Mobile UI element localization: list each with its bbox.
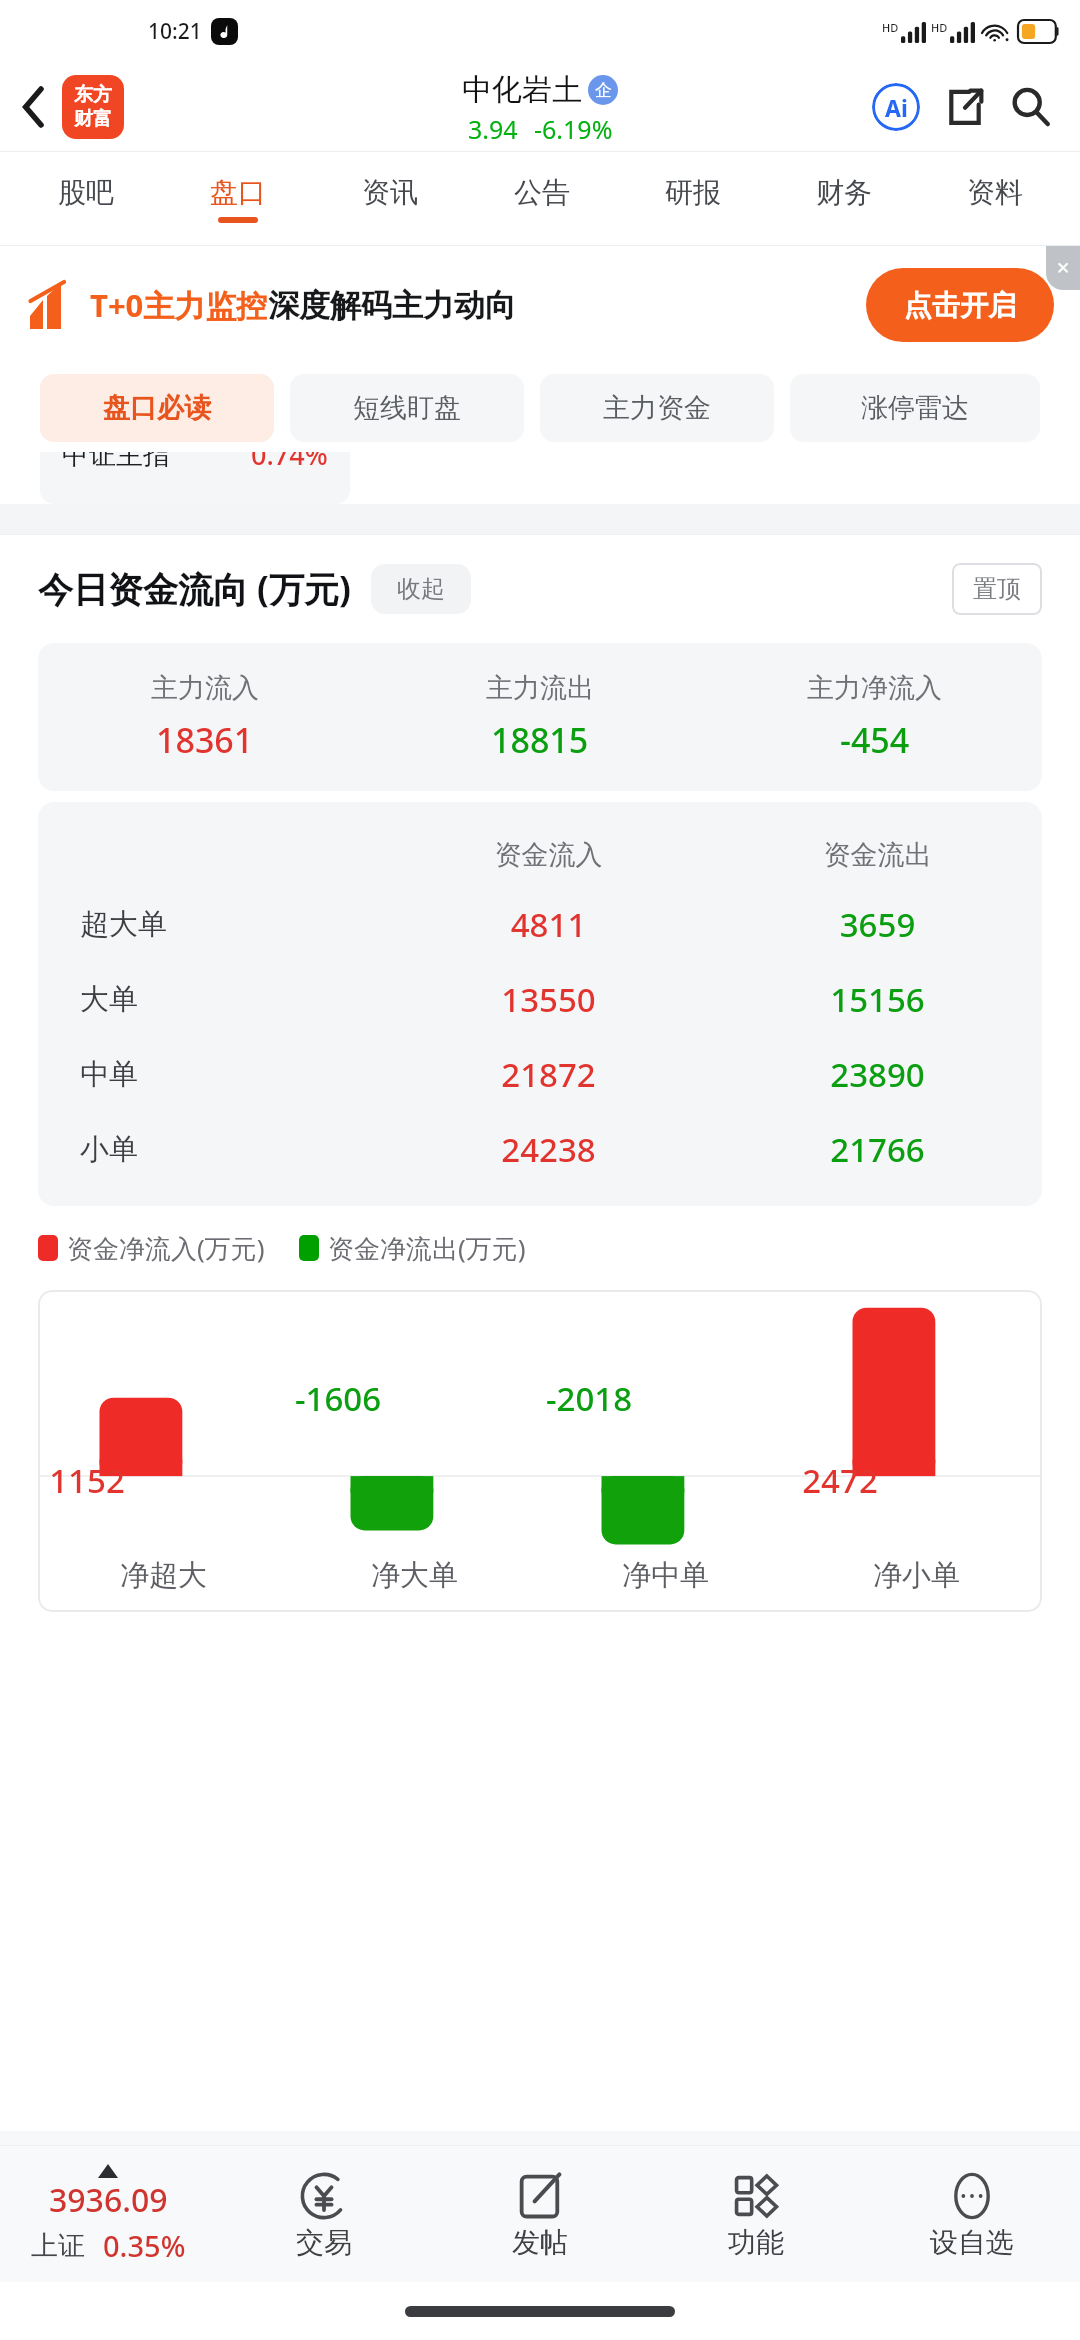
staticText: 2472 bbox=[785, 1458, 895, 1503]
staticText: 资金净流出(万元) bbox=[328, 1230, 526, 1266]
staticText: 13550 bbox=[384, 977, 713, 1022]
button[interactable]: 东方 bbox=[62, 75, 124, 139]
staticText: 主力净流入 bbox=[807, 671, 942, 705]
staticText: 超大单 bbox=[80, 906, 167, 943]
staticText: 深度解码主力动向 bbox=[268, 286, 516, 325]
staticText: -1606 bbox=[283, 1376, 393, 1421]
staticText: 资金净流入(万元) bbox=[67, 1230, 265, 1266]
staticText: 盘口 bbox=[210, 175, 266, 210]
staticText: 短线盯盘 bbox=[353, 391, 461, 425]
button[interactable]: 发帖 bbox=[432, 2146, 648, 2282]
button[interactable]: 涨停雷达 bbox=[790, 374, 1040, 442]
staticText: 收起 bbox=[397, 574, 445, 604]
staticText: 功能 bbox=[728, 2225, 784, 2260]
button[interactable]: 主力资金 bbox=[540, 374, 774, 442]
button[interactable]: Back bbox=[6, 79, 62, 135]
staticText: 盘口必读 bbox=[103, 391, 211, 425]
staticText: -6.19% bbox=[534, 112, 613, 146]
staticText: 东方 bbox=[74, 83, 112, 107]
staticText: 净大单 bbox=[371, 1557, 458, 1594]
staticText: T+0主力监控 bbox=[90, 284, 268, 326]
button[interactable]: 盘口 bbox=[162, 152, 314, 245]
button[interactable]: 设自选 bbox=[864, 2146, 1080, 2282]
staticText: HD bbox=[882, 20, 899, 35]
staticText: 0.74% bbox=[251, 452, 328, 473]
staticText: 股吧 bbox=[58, 175, 114, 210]
staticText: 主力流出 bbox=[486, 671, 594, 705]
staticText: HD bbox=[931, 20, 948, 35]
staticText: 企 bbox=[595, 80, 612, 101]
staticText: 主力资金 bbox=[603, 391, 711, 425]
button[interactable]: Search bbox=[1000, 76, 1062, 138]
staticText: 公告 bbox=[514, 175, 570, 210]
staticText: 资料 bbox=[967, 175, 1023, 210]
staticText: 研报 bbox=[665, 175, 721, 210]
button[interactable]: 点击开启 bbox=[866, 268, 1054, 342]
staticText: 净超大 bbox=[120, 1557, 207, 1594]
staticText: 涨停雷达 bbox=[861, 391, 969, 425]
staticText: 净中单 bbox=[622, 1557, 709, 1594]
button[interactable]: Close ad bbox=[1046, 246, 1080, 290]
staticText: 主力流入 bbox=[151, 671, 259, 705]
staticText: -454 bbox=[840, 717, 910, 763]
staticText: 交易 bbox=[296, 2225, 352, 2260]
button[interactable]: 公告 bbox=[466, 152, 617, 245]
staticText: 财富 bbox=[74, 107, 112, 131]
button[interactable]: 交易 bbox=[216, 2146, 432, 2282]
button[interactable]: 财务 bbox=[768, 152, 919, 245]
staticText: 净小单 bbox=[873, 1557, 960, 1594]
staticText: 置顶 bbox=[973, 574, 1021, 604]
staticText: 大单 bbox=[80, 981, 138, 1018]
staticText: 资金流入 bbox=[384, 838, 713, 872]
staticText: 21766 bbox=[713, 1127, 1042, 1172]
staticText: Ai bbox=[885, 92, 908, 123]
button[interactable]: 3936.09 bbox=[0, 2146, 216, 2282]
staticText: 18815 bbox=[491, 717, 589, 763]
staticText: 0.35% bbox=[103, 2226, 186, 2265]
staticText: 3659 bbox=[713, 902, 1042, 947]
staticText: 点击开启 bbox=[904, 288, 1016, 323]
button[interactable]: 置顶 bbox=[952, 563, 1042, 615]
staticText: 15156 bbox=[713, 977, 1042, 1022]
staticText: ✕ bbox=[1056, 258, 1071, 278]
button[interactable]: 资讯 bbox=[314, 152, 466, 245]
staticText: 18361 bbox=[156, 717, 254, 763]
staticText: 1152 bbox=[38, 1458, 142, 1503]
button[interactable]: 资料 bbox=[919, 152, 1070, 245]
staticText: 4811 bbox=[384, 902, 713, 947]
button[interactable]: 股吧 bbox=[10, 152, 162, 245]
staticText: 上证 bbox=[31, 2229, 85, 2263]
staticText: 中单 bbox=[80, 1056, 138, 1093]
button[interactable]: AI assistant bbox=[864, 75, 928, 139]
button[interactable]: 盘口必读 bbox=[40, 374, 274, 442]
staticText: 中证主指 bbox=[62, 452, 170, 472]
staticText: 23890 bbox=[713, 1052, 1042, 1097]
button[interactable]: 功能 bbox=[648, 2146, 864, 2282]
staticText: 10:21 bbox=[148, 17, 202, 46]
staticText: 小单 bbox=[80, 1131, 138, 1168]
button[interactable]: 短线盯盘 bbox=[290, 374, 524, 442]
staticText: 中化岩土 bbox=[462, 71, 582, 109]
staticText: 21872 bbox=[384, 1052, 713, 1097]
button[interactable]: 研报 bbox=[617, 152, 768, 245]
staticText: 资讯 bbox=[362, 175, 418, 210]
button[interactable]: Share bbox=[934, 76, 996, 138]
staticText: -2018 bbox=[534, 1376, 644, 1421]
staticText: 发帖 bbox=[512, 2225, 568, 2260]
staticText: 资金流出 bbox=[713, 838, 1042, 872]
staticText: 设自选 bbox=[930, 2225, 1014, 2260]
button[interactable]: 收起 bbox=[371, 564, 471, 614]
staticText: 24238 bbox=[384, 1127, 713, 1172]
staticText: 3936.09 bbox=[49, 2178, 168, 2222]
staticText: 3.94 bbox=[468, 112, 518, 146]
staticText: 财务 bbox=[816, 175, 872, 210]
staticText: 今日资金流向 (万元) bbox=[38, 565, 351, 613]
